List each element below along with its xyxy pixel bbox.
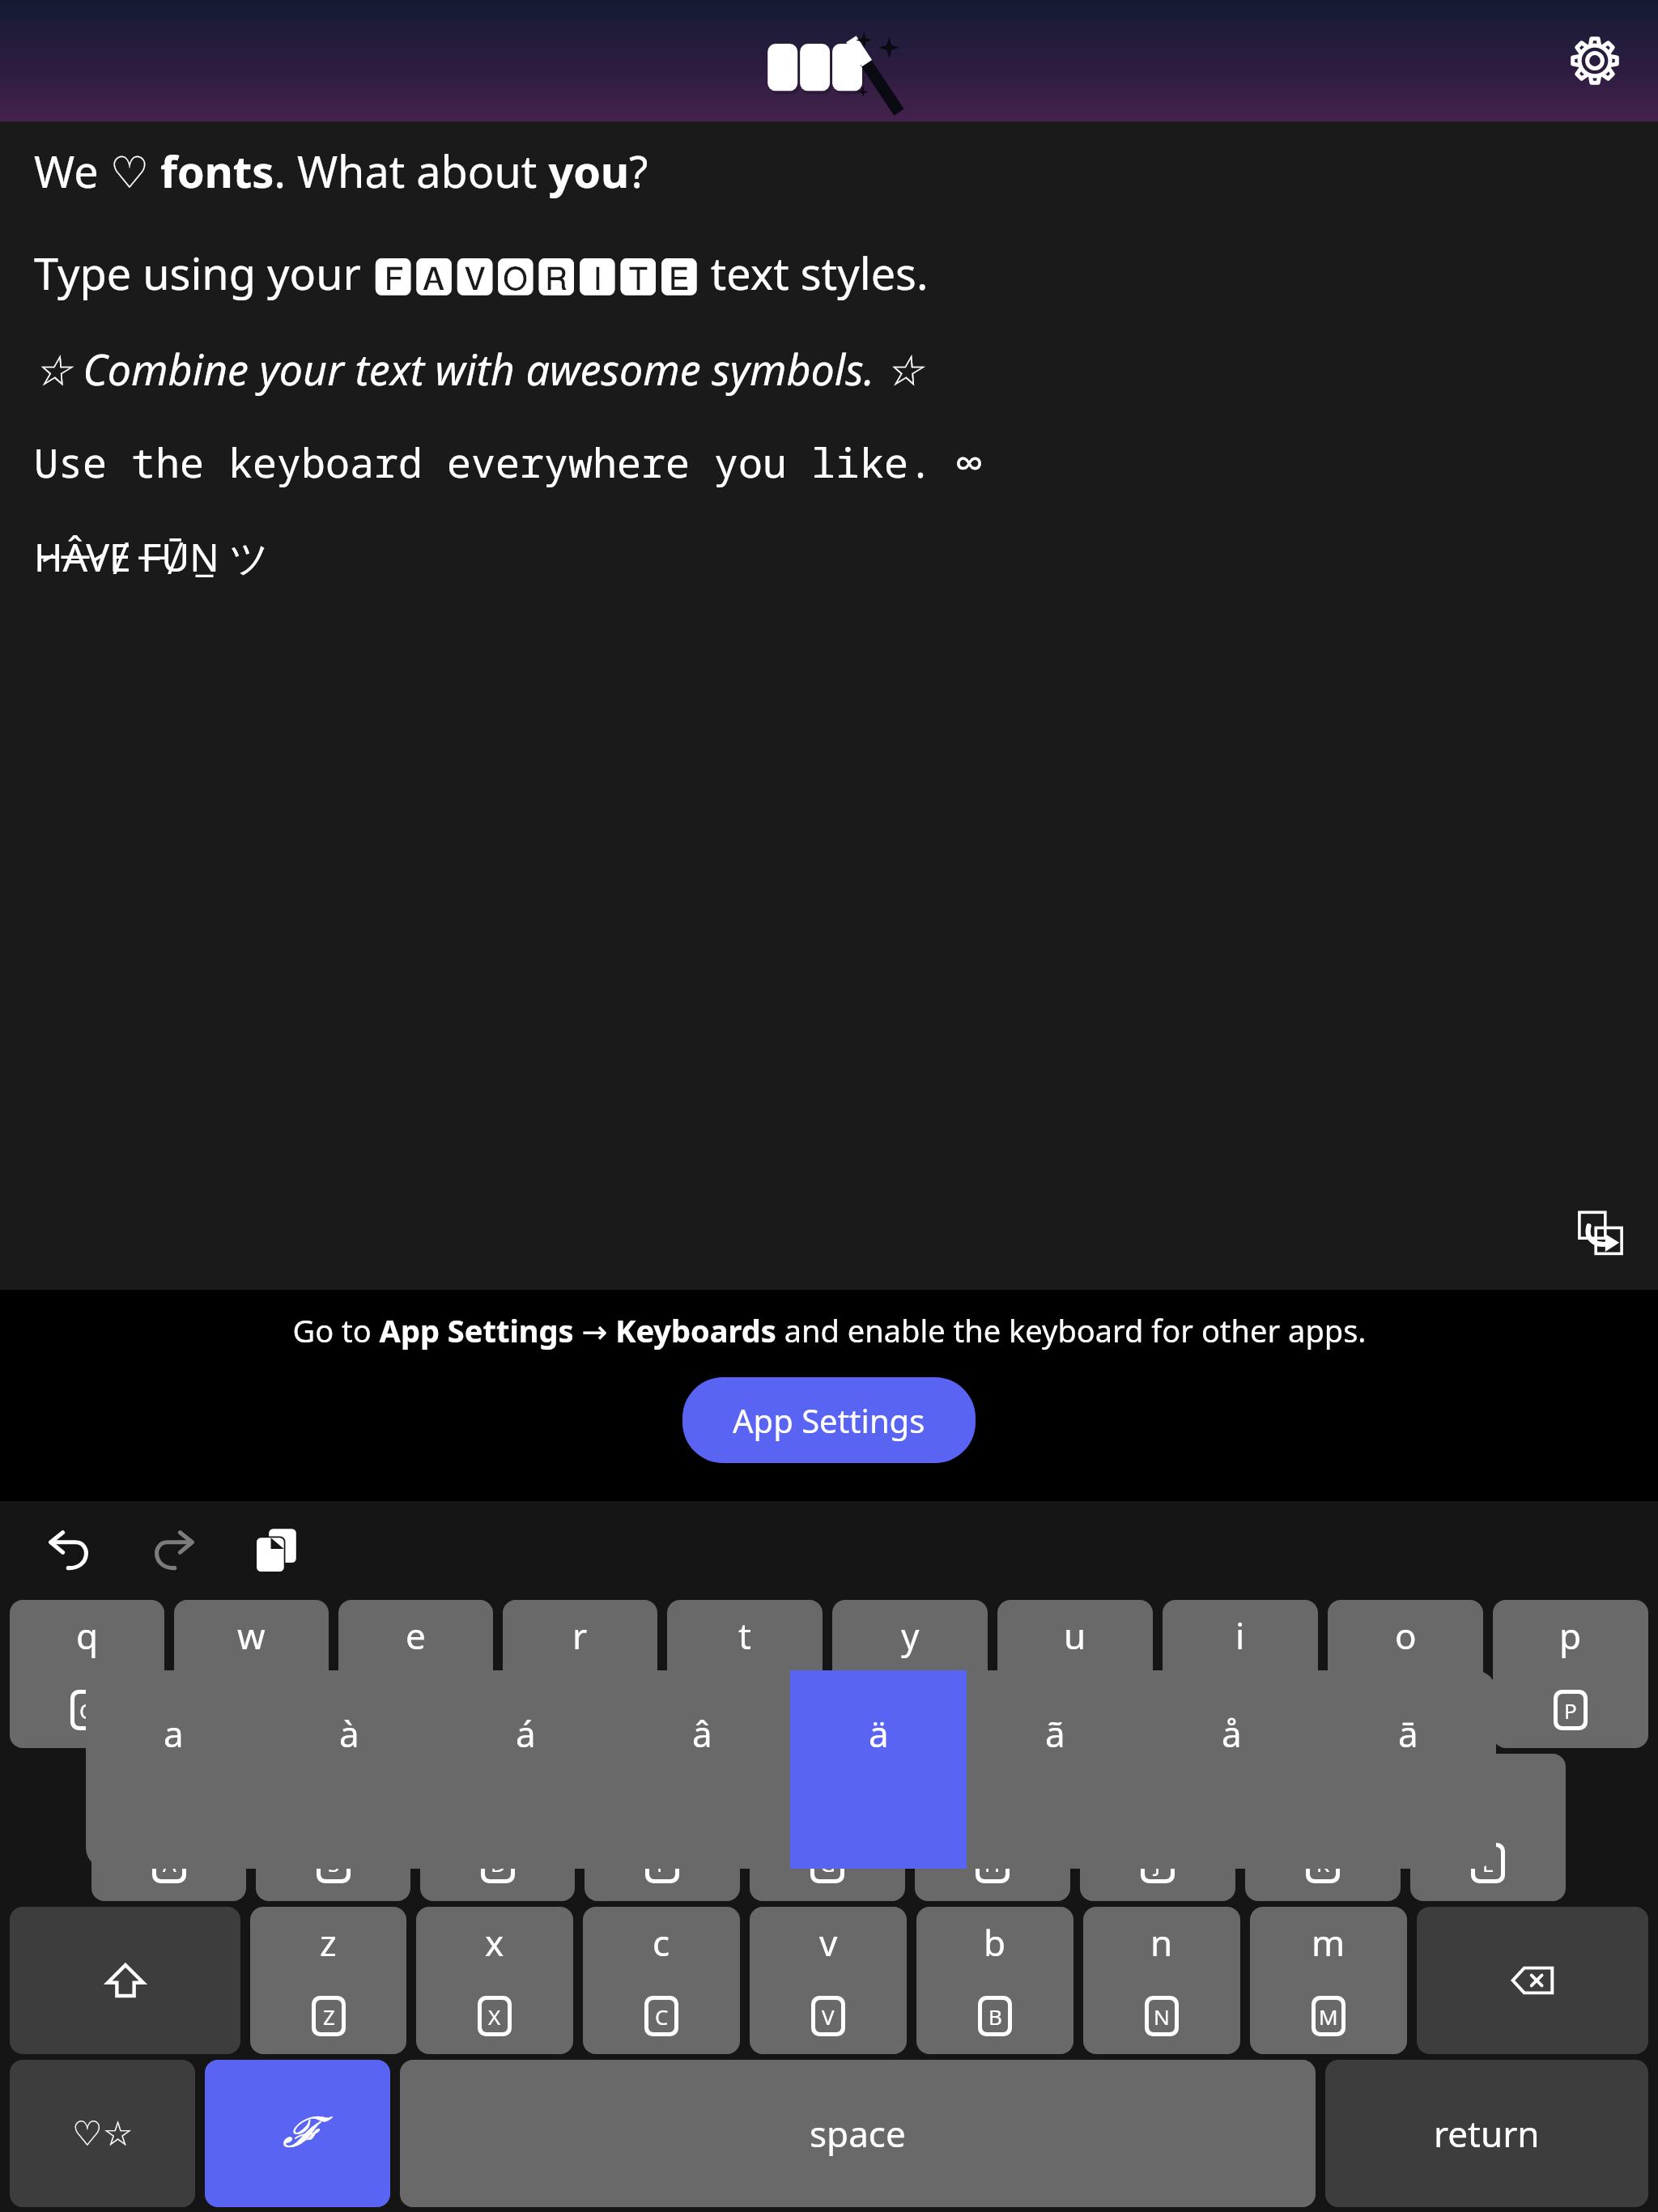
staticText: ã [1045,1709,1065,1758]
staticText: Z [323,2002,335,2031]
button[interactable]: b [916,1907,1073,2054]
button[interactable]: g [750,1754,905,1901]
staticText: ☆ Combine your text with awesome symbols… [34,340,924,398]
staticText: S [328,1849,340,1878]
button[interactable]: n [1083,1907,1240,2054]
staticText: i [1235,1611,1245,1660]
button[interactable]: App logo [766,20,928,111]
staticText: App Settings [733,1398,925,1442]
button[interactable]: x [416,1907,573,2054]
button[interactable]: p [1493,1600,1648,1748]
button[interactable]: Redo [134,1512,212,1589]
staticText: 𝓕 [282,2112,313,2155]
staticText: Q [79,1696,96,1725]
button[interactable]: y [832,1600,988,1748]
button[interactable]: à [261,1670,437,1869]
staticText: M [1319,2002,1338,2031]
staticText: ā [1398,1709,1418,1758]
staticText: p [1559,1611,1582,1660]
button[interactable]: e [338,1600,493,1748]
staticText: Use the keyboard everywhere you like. ∞ [34,435,981,490]
button[interactable]: a [91,1754,246,1901]
button[interactable]: å [1143,1670,1320,1869]
button[interactable]: i [1163,1600,1318,1748]
staticText: V [822,2002,835,2031]
staticText: D [491,1849,506,1878]
button[interactable]: c [583,1907,740,2054]
button[interactable]: Symbols and emoji [10,2060,195,2207]
button[interactable]: Font styles [205,2060,390,2207]
button[interactable]: t [667,1600,823,1748]
staticText: space [810,2109,906,2158]
button[interactable]: m [1250,1907,1407,2054]
staticText: Go to App Settings → Keyboards and enabl… [292,1309,1367,1351]
button[interactable]: á [437,1670,614,1869]
button[interactable]: Undo [31,1512,108,1589]
button[interactable]: o [1328,1600,1483,1748]
staticText: å [1222,1709,1242,1758]
staticText: q [76,1611,99,1660]
button[interactable]: Backspace [1417,1907,1648,2054]
staticText: y [901,1611,920,1660]
staticText: B [988,2002,1002,2031]
staticText: c [653,1918,670,1967]
staticText: A [163,1849,176,1878]
staticText: w [237,1611,266,1660]
button[interactable]: f [585,1754,740,1901]
button[interactable]: return [1325,2060,1648,2207]
button[interactable]: Send text to another app [1567,1201,1634,1267]
button[interactable]: â [614,1670,790,1869]
button[interactable]: q [10,1600,164,1748]
staticText: à [339,1709,359,1758]
button[interactable]: z [250,1907,406,2054]
staticText: v [819,1918,838,1967]
staticText: N [1154,2002,1170,2031]
staticText: H̷Â̶V̷E̸ F̶Ū̸N̲ ツ [34,530,270,584]
staticText: H [984,1849,1001,1878]
button[interactable]: space [400,2060,1316,2207]
button[interactable]: h [915,1754,1070,1901]
staticText: We ♡ fonts. What about you? [34,141,648,201]
staticText: o [1395,1611,1417,1660]
staticText: return [1434,2109,1540,2158]
staticText: â [692,1709,712,1758]
staticText: C [655,2002,669,2031]
button[interactable]: l [1410,1754,1566,1901]
button[interactable]: ā [1320,1670,1496,1869]
staticText: Type using your 🅵🅰🆅🅾🆁🅸🆃🅴 text styles. [34,243,929,303]
button[interactable]: j [1080,1754,1235,1901]
button[interactable]: u [997,1600,1153,1748]
button[interactable]: ä [790,1670,967,1869]
button[interactable]: w [174,1600,329,1748]
staticText: b [984,1918,1006,1967]
button[interactable]: a [86,1670,261,1869]
button[interactable]: Shift [10,1907,240,2054]
button[interactable]: App Settings [682,1377,976,1463]
button[interactable]: v [750,1907,907,2054]
button[interactable]: ã [967,1670,1143,1869]
button[interactable]: r [503,1600,657,1748]
button[interactable]: k [1245,1754,1401,1901]
button[interactable]: Copy [238,1512,316,1589]
button[interactable]: s [256,1754,410,1901]
staticText: ♡☆ [72,2114,134,2154]
staticText: G [820,1849,835,1878]
staticText: O [1397,1696,1414,1725]
staticText: á [516,1709,536,1758]
button[interactable]: d [420,1754,575,1901]
staticText: u [1064,1611,1086,1660]
button[interactable]: Settings [1553,19,1637,103]
